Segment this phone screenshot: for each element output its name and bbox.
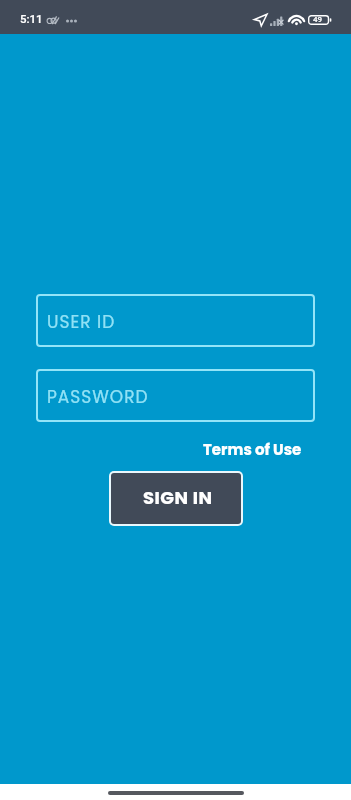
staticText: Terms of Use [203, 439, 302, 460]
other: Mobile signal, no SIM [270, 16, 285, 26]
staticText: 5:11 [20, 12, 43, 25]
other: Home gesture bar [108, 791, 244, 795]
button[interactable]: Terms of Use [203, 438, 315, 461]
staticText: USER ID [47, 310, 116, 334]
staticText: SIGN IN [143, 485, 213, 510]
staticText: 49 [313, 15, 323, 24]
other: Wi-Fi [288, 14, 305, 25]
other: Location [254, 14, 267, 26]
button[interactable]: PASSWORD [36, 369, 315, 422]
other: Battery 49 percent [308, 15, 331, 25]
button[interactable]: SIGN IN [111, 473, 241, 524]
staticText: PASSWORD [47, 385, 149, 409]
button[interactable]: USER ID [36, 294, 315, 347]
